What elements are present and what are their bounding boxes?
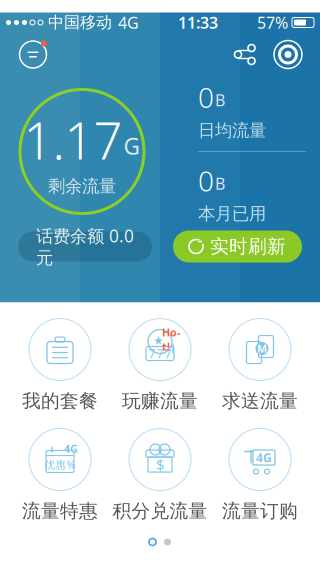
staticText: M — [257, 341, 267, 356]
staticText: 优惠% — [44, 457, 75, 472]
staticText: 1.17 — [23, 106, 122, 173]
staticText: 0 — [198, 162, 214, 199]
staticText: 11:33 — [178, 12, 218, 33]
staticText: 本月已用 — [198, 203, 266, 224]
staticText: 7 — [164, 346, 171, 361]
staticText: 积分兑流量 — [112, 499, 207, 522]
button[interactable]: 设置 — [270, 36, 306, 72]
staticText: 7 — [156, 346, 163, 361]
staticText: 求送流量 — [222, 389, 298, 412]
staticText: 7 — [148, 346, 155, 361]
staticText: B — [215, 173, 225, 194]
staticText: 话费余额 0.0元 — [36, 224, 134, 269]
staticText: 剩余流量 — [48, 175, 116, 197]
staticText: 我的套餐 — [22, 389, 98, 412]
staticText: 日均流量 — [198, 120, 266, 141]
staticText: B — [215, 89, 225, 111]
staticText: 4G — [118, 12, 139, 33]
button[interactable]: M — [210, 310, 310, 420]
staticText: 玩赚流量 — [122, 389, 198, 412]
button[interactable]: 话费余额 0.0元 — [18, 231, 152, 261]
staticText: 0 — [198, 78, 214, 116]
staticText: 实时刷新 — [210, 235, 286, 258]
staticText: 4G — [64, 441, 78, 456]
staticText: 流量特惠 — [22, 499, 98, 522]
staticText: G — [123, 131, 140, 161]
staticText: $ — [156, 455, 164, 474]
staticText: 57% — [257, 12, 288, 33]
button[interactable]: 4G — [210, 420, 310, 530]
button[interactable]: 优惠% — [10, 420, 110, 530]
button[interactable]: 7 — [110, 310, 210, 420]
staticText: ★ — [153, 334, 164, 347]
button[interactable]: 消息 — [14, 35, 52, 73]
button[interactable]: 我的套餐 — [10, 310, 110, 420]
staticText: Hot! — [162, 325, 180, 354]
button[interactable]: 实时刷新 — [173, 230, 302, 262]
button[interactable]: 分享 — [228, 37, 262, 71]
staticText: 4G — [256, 450, 272, 465]
staticText: 流量订购 — [222, 499, 298, 522]
staticText: 中国移动 — [48, 13, 112, 32]
button[interactable]: $ — [110, 420, 210, 530]
